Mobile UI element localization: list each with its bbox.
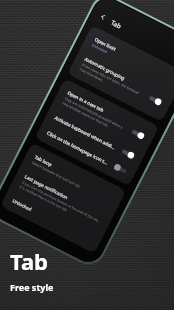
button[interactable]: Open limit: [81, 27, 174, 95]
button[interactable]: Toggle on: [121, 148, 135, 160]
staticText: Free style: [10, 281, 54, 293]
button[interactable]: Open in a new tab: [51, 81, 158, 153]
button[interactable]: Automatic grouping: [68, 47, 174, 119]
button[interactable]: Toggle off: [113, 163, 128, 175]
staticText: Click on the homepage icon to close all …: [46, 130, 110, 166]
staticText: Tab: [110, 18, 123, 30]
button[interactable]: Unlocked: [1, 189, 103, 251]
staticText: Open in a new tab: [66, 89, 105, 113]
staticText: Activate keyboard when adding tab: [54, 114, 118, 151]
staticText: Tab loop: [34, 154, 53, 168]
button[interactable]: Tab loop: [21, 145, 125, 213]
button[interactable]: Last page notification: [9, 165, 115, 237]
staticText: Open limit: [94, 36, 117, 52]
staticText: Tab: [10, 246, 49, 276]
button[interactable]: Back: [95, 9, 111, 25]
button[interactable]: Toggle on: [131, 128, 145, 140]
staticText: They are automatically grouped when a ne…: [61, 96, 127, 136]
button[interactable]: Toggle on: [148, 94, 163, 106]
staticText: If you click the previous button at the …: [19, 179, 102, 228]
staticText: If too many tabs are open, the browser m…: [79, 62, 145, 102]
staticText: Unlocked: [12, 197, 33, 212]
button[interactable]: Activate keyboard when adding tab: [43, 105, 146, 168]
staticText: Switch between first and last tab: [31, 160, 81, 189]
button[interactable]: Click on the homepage icon to close all …: [36, 120, 138, 183]
staticText: Automatic grouping: [84, 56, 127, 81]
staticText: Unlimited: [91, 42, 108, 54]
staticText: Last page notification: [24, 173, 69, 200]
